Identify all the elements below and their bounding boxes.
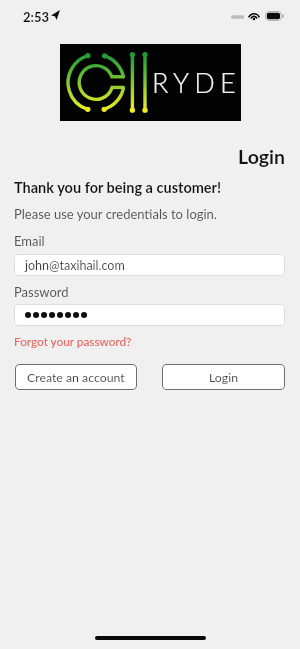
staticText: Thank you for being a customer! [14,179,222,196]
staticText: Password [14,284,69,300]
button[interactable]: Login [162,364,285,390]
staticText: 2:53 [23,9,49,25]
other: Wi-Fi [248,10,260,20]
button[interactable]: Forgot your password? [14,334,132,348]
other: Cellular signal [231,15,244,19]
staticText: Login [209,370,239,385]
staticText: john@taxihail.com [25,258,125,273]
staticText: Email [14,233,45,249]
staticText: Create an account [27,370,125,385]
other: Location active [51,10,60,20]
staticText: Login [0,145,285,168]
button[interactable] [14,304,285,326]
staticText: RYDE [152,66,241,98]
staticText: Forgot your password? [14,334,132,348]
button[interactable]: Create an account [15,364,137,390]
other: Battery [265,11,284,21]
button[interactable]: john@taxihail.com [14,254,285,276]
staticText: Please use your credentials to login. [14,206,217,222]
